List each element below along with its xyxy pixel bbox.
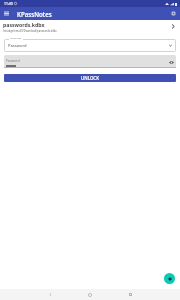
- button[interactable]: UNLOCK: [4, 74, 176, 82]
- button[interactable]: passwords.kdbx: [0, 20, 180, 33]
- button[interactable]: Settings: [167, 7, 180, 20]
- button[interactable]: Show password: [168, 59, 175, 66]
- staticText: passwords.kdbx: [3, 21, 45, 28]
- staticText: Unlock type: [10, 37, 22, 40]
- button[interactable]: Home: [84, 289, 96, 300]
- button[interactable]: Add: [164, 273, 175, 284]
- button[interactable]: Recent apps: [124, 289, 136, 300]
- staticText: /storage/emul/0/Download/passwords.kdbx: [3, 29, 57, 33]
- staticText: UNLOCK: [81, 75, 99, 81]
- button[interactable]: Password: [4, 39, 176, 52]
- staticText: Password: [8, 43, 27, 49]
- button[interactable]: Open navigation menu: [0, 7, 13, 20]
- staticText: KPassNotes: [17, 10, 52, 18]
- button[interactable]: Password: [4, 55, 176, 68]
- staticText: 11:40: [4, 1, 13, 6]
- button[interactable]: Back: [44, 289, 56, 300]
- staticText: Password: [6, 59, 20, 63]
